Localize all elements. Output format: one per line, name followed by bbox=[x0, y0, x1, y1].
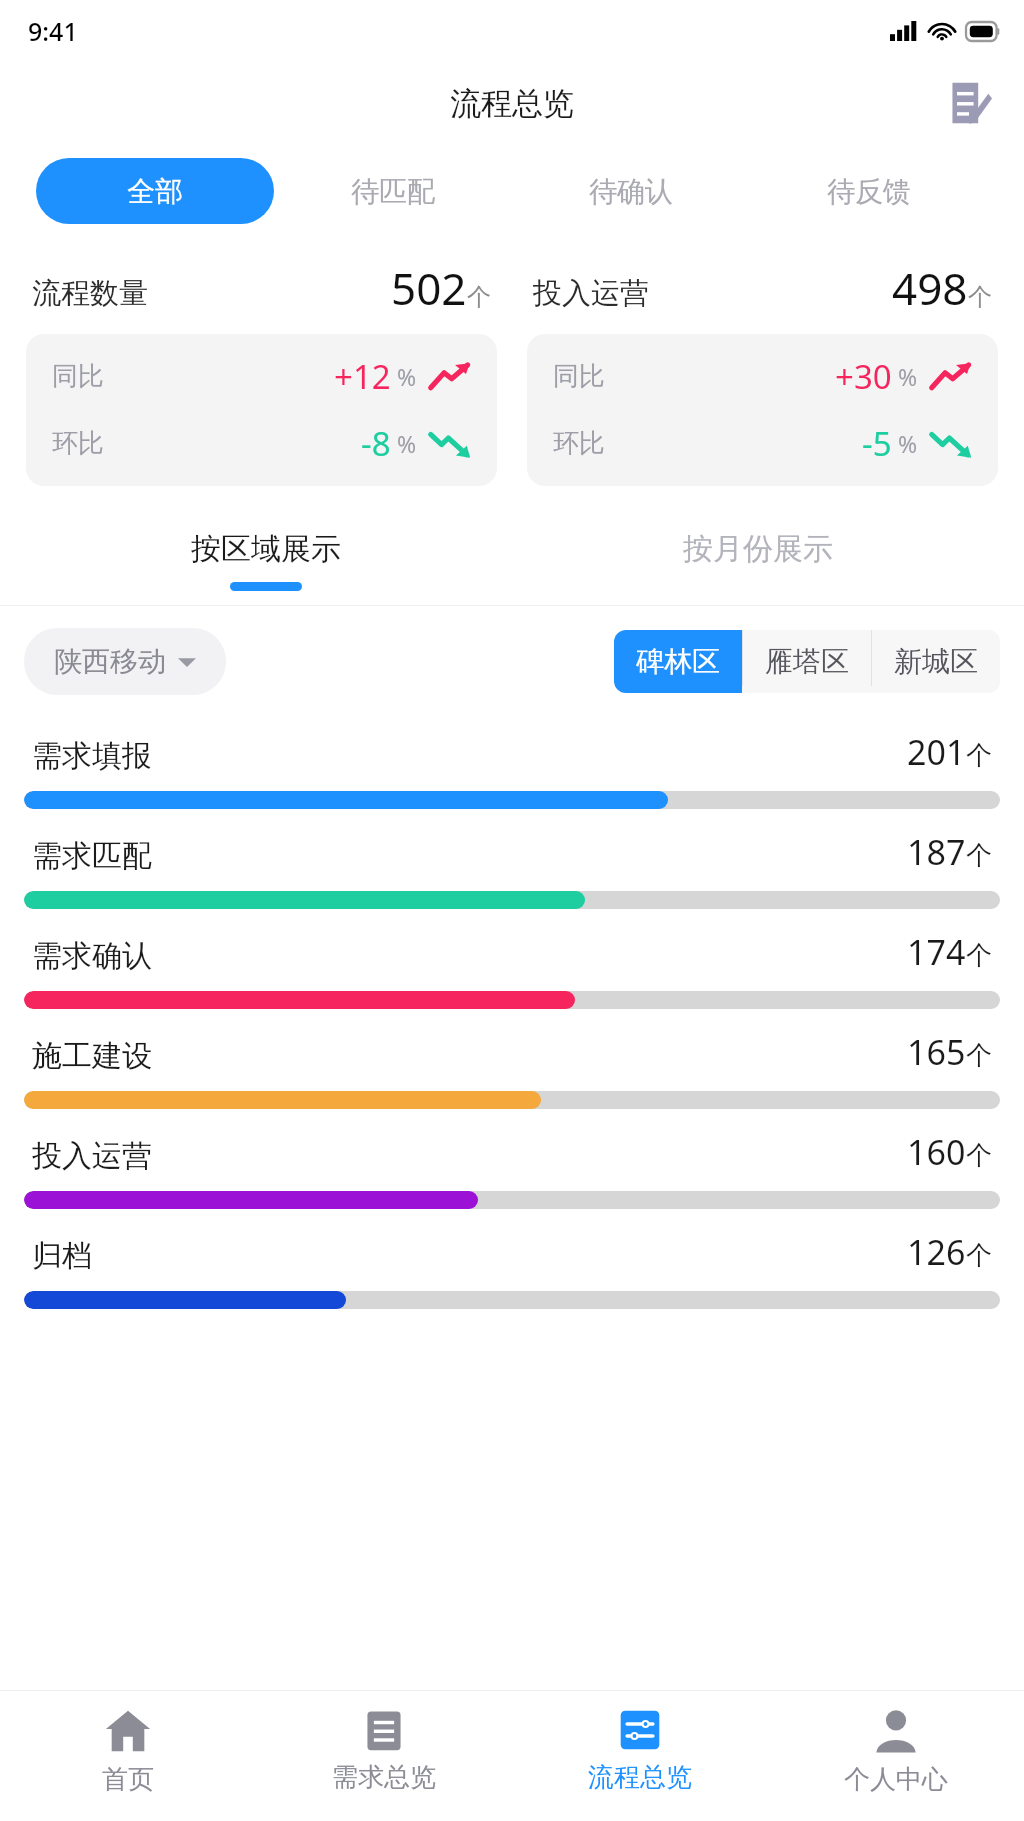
staticText: 同比 bbox=[52, 360, 104, 393]
staticText: 个 bbox=[966, 739, 992, 772]
staticText: 个人中心 bbox=[844, 1763, 948, 1796]
staticText: 碑林区 bbox=[636, 644, 720, 679]
staticText: 同比 bbox=[553, 360, 605, 393]
staticText: 首页 bbox=[102, 1763, 154, 1796]
button[interactable]: 个人中心 bbox=[768, 1691, 1024, 1821]
button[interactable]: 碑林区 bbox=[614, 630, 742, 693]
staticText: 需求总览 bbox=[332, 1761, 436, 1794]
button[interactable]: Edit bbox=[940, 74, 998, 132]
staticText: 雁塔区 bbox=[765, 644, 849, 679]
staticText: 个 bbox=[966, 939, 992, 972]
staticText: -5 bbox=[862, 421, 892, 466]
staticText: % bbox=[898, 361, 918, 392]
staticText: 个 bbox=[467, 282, 491, 312]
button[interactable]: 陕西移动 bbox=[24, 628, 226, 695]
staticText: 187 bbox=[907, 829, 966, 875]
staticText: 新城区 bbox=[894, 644, 978, 679]
staticText: +12 bbox=[334, 354, 391, 399]
button[interactable]: 需求匹配 bbox=[24, 815, 1000, 915]
staticText: 126 bbox=[907, 1229, 966, 1275]
staticText: 陕西移动 bbox=[54, 644, 166, 679]
staticText: 160 bbox=[907, 1129, 966, 1175]
staticText: 需求确认 bbox=[32, 937, 152, 975]
staticText: 待匹配 bbox=[351, 174, 435, 209]
staticText: 全部 bbox=[127, 174, 183, 209]
button[interactable]: 施工建设 bbox=[24, 1015, 1000, 1115]
staticText: 归档 bbox=[32, 1237, 92, 1275]
button[interactable]: 归档 bbox=[24, 1215, 1000, 1315]
button[interactable]: 流程总览 bbox=[512, 1691, 768, 1821]
staticText: 投入运营 bbox=[32, 1137, 152, 1175]
button[interactable]: 同比 bbox=[26, 334, 497, 486]
button[interactable]: 全部 bbox=[36, 158, 274, 224]
button[interactable]: 新城区 bbox=[872, 630, 1000, 693]
staticText: % bbox=[397, 428, 417, 459]
button[interactable]: 同比 bbox=[527, 334, 998, 486]
staticText: 流程数量 bbox=[32, 275, 148, 312]
staticText: 环比 bbox=[553, 427, 605, 460]
staticText: 按区域展示 bbox=[191, 530, 341, 568]
staticText: 需求填报 bbox=[32, 737, 152, 775]
staticText: 流程总览 bbox=[588, 1761, 692, 1794]
button[interactable]: 需求填报 bbox=[24, 715, 1000, 815]
button[interactable]: 按月份展示 bbox=[512, 522, 1004, 599]
staticText: 施工建设 bbox=[32, 1037, 152, 1075]
staticText: 174 bbox=[907, 929, 966, 975]
staticText: 201 bbox=[907, 729, 966, 775]
staticText: 165 bbox=[907, 1029, 966, 1075]
staticText: % bbox=[397, 361, 417, 392]
staticText: 待反馈 bbox=[827, 174, 911, 209]
button[interactable]: 需求总览 bbox=[256, 1691, 512, 1821]
staticText: 待确认 bbox=[589, 174, 673, 209]
staticText: 流程总览 bbox=[450, 84, 574, 123]
staticText: 502 bbox=[391, 258, 467, 318]
button[interactable]: 投入运营 bbox=[24, 1115, 1000, 1215]
staticText: 环比 bbox=[52, 427, 104, 460]
staticText: 个 bbox=[966, 839, 992, 872]
staticText: 个 bbox=[968, 282, 992, 312]
staticText: 498 bbox=[892, 258, 968, 318]
staticText: 投入运营 bbox=[533, 275, 649, 312]
button[interactable]: 雁塔区 bbox=[743, 630, 871, 693]
staticText: 个 bbox=[966, 1239, 992, 1272]
staticText: 按月份展示 bbox=[683, 530, 833, 568]
button[interactable]: 待反馈 bbox=[750, 158, 988, 224]
staticText: 个 bbox=[966, 1039, 992, 1072]
staticText: -8 bbox=[361, 421, 391, 466]
staticText: % bbox=[898, 428, 918, 459]
staticText: 需求匹配 bbox=[32, 837, 152, 875]
button[interactable]: 按区域展示 bbox=[20, 522, 512, 599]
button[interactable]: 首页 bbox=[0, 1691, 256, 1821]
staticText: 9:41 bbox=[28, 14, 78, 48]
button[interactable]: 需求确认 bbox=[24, 915, 1000, 1015]
button[interactable]: 待匹配 bbox=[274, 158, 512, 224]
button[interactable]: 待确认 bbox=[512, 158, 750, 224]
staticText: 个 bbox=[966, 1139, 992, 1172]
staticText: +30 bbox=[835, 354, 892, 399]
